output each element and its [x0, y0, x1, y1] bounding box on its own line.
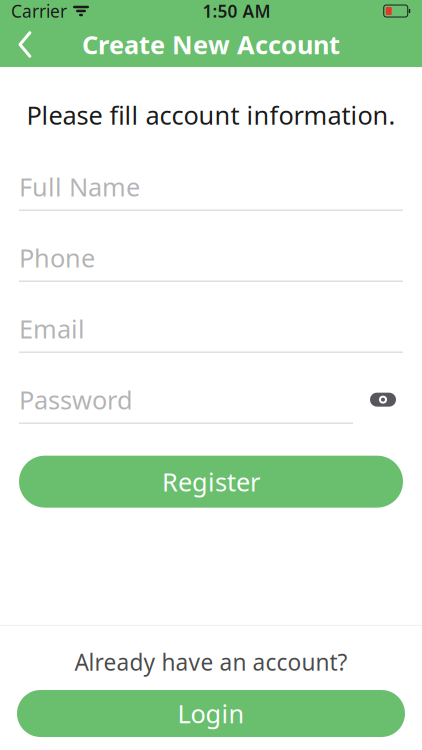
- staticText: Please fill account information.: [26, 98, 395, 132]
- staticText: Carrier: [11, 0, 67, 22]
- button[interactable]: Login: [17, 690, 405, 737]
- button[interactable]: Show password: [363, 385, 403, 415]
- staticText: Full Name: [19, 170, 140, 203]
- staticText: Already have an account?: [74, 647, 347, 677]
- staticText: Create New Account: [82, 28, 340, 61]
- staticText: Register: [162, 465, 260, 498]
- staticText: Login: [177, 697, 244, 730]
- staticText: Password: [19, 383, 133, 416]
- staticText: Email: [19, 312, 85, 345]
- button[interactable]: Back: [0, 22, 51, 67]
- staticText: 1:50 AM: [202, 0, 270, 22]
- button[interactable]: Register: [19, 456, 403, 508]
- staticText: Phone: [19, 241, 95, 274]
